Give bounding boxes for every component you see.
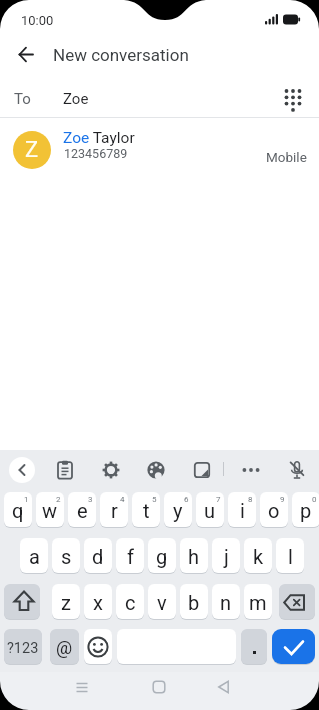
button[interactable]: q [4,492,32,527]
staticText: 2 [56,495,61,504]
button[interactable] [272,629,315,664]
staticText: ?123 [7,640,39,657]
button[interactable] [208,676,240,700]
button[interactable] [9,457,35,483]
button[interactable] [280,87,307,114]
button[interactable]: d [84,538,112,573]
staticText: n [220,591,232,614]
button[interactable]: x [84,584,112,619]
button[interactable]: g [148,538,176,573]
button[interactable] [0,121,319,179]
staticText: 6 [184,495,189,504]
staticText: w [42,499,58,522]
button[interactable]: @ [50,629,79,664]
button[interactable]: c [116,584,144,619]
staticText: o [268,499,280,522]
button[interactable]: w [36,492,64,527]
staticText: m [249,591,267,614]
staticText: d [92,545,104,568]
button[interactable] [241,629,267,664]
staticText: 123456789 [64,146,128,161]
staticText: e [77,499,88,522]
button[interactable] [55,460,75,480]
staticText: a [29,545,40,568]
button[interactable]: e [68,492,96,527]
button[interactable] [12,41,40,69]
staticText: u [204,499,216,522]
staticText: l [288,545,293,568]
staticText: 5 [152,495,157,504]
button[interactable]: ?123 [4,629,42,664]
button[interactable]: r [100,492,128,527]
staticText: To [14,90,31,108]
button[interactable]: l [276,538,304,573]
staticText: Mobile [266,149,307,165]
staticText: i [240,499,245,522]
button[interactable] [279,584,315,619]
button[interactable]: s [52,538,80,573]
button[interactable]: p [292,492,319,527]
staticText: 3 [88,495,93,504]
button[interactable]: t [132,492,160,527]
staticText: v [157,591,167,614]
button[interactable]: a [20,538,48,573]
button[interactable]: k [244,538,272,573]
staticText: 9 [280,495,285,504]
button[interactable] [4,584,40,619]
staticText: Zoe Taylor [63,129,135,147]
staticText: t [143,499,150,522]
button[interactable] [66,676,98,700]
staticText: New conversation [53,45,189,65]
button[interactable] [241,460,261,480]
staticText: x [93,591,103,614]
staticText: Zoe [63,90,89,108]
staticText: r [111,499,118,522]
staticText: j [224,545,229,568]
staticText: g [156,545,168,568]
staticText: 4 [120,495,125,504]
button[interactable] [192,460,212,480]
button[interactable]: b [180,584,208,619]
button[interactable]: y [164,492,192,527]
button[interactable]: i [228,492,256,527]
staticText: f [127,545,134,568]
staticText: s [61,545,72,568]
button[interactable]: o [260,492,288,527]
staticText: 1 [24,495,29,504]
staticText: @ [56,637,73,658]
button[interactable]: f [116,538,144,573]
button[interactable]: u [196,492,224,527]
staticText: p [300,499,312,522]
staticText: q [12,499,24,522]
button[interactable]: z [52,584,80,619]
staticText: 8 [248,495,253,504]
staticText: b [188,591,200,614]
button[interactable] [101,460,121,480]
button[interactable]: h [180,538,208,573]
staticText: k [253,545,264,568]
staticText: z [61,591,71,614]
staticText: c [125,591,136,614]
button[interactable]: v [148,584,176,619]
staticText: Z [25,137,39,163]
button[interactable] [287,460,307,480]
staticText: 0 [312,495,317,504]
button[interactable]: j [212,538,240,573]
button[interactable] [146,460,166,480]
staticText: 7 [216,495,221,504]
button[interactable] [143,676,175,700]
staticText: 10:00 [21,13,54,28]
button[interactable]: n [212,584,240,619]
staticText: y [173,499,183,522]
button[interactable]: m [244,584,272,619]
staticText: h [188,545,200,568]
button[interactable] [84,629,112,664]
